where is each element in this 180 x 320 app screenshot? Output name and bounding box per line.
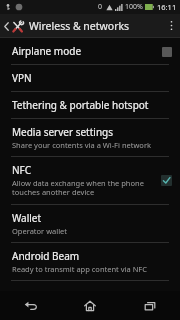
staticText: 0: [98, 2, 103, 12]
button[interactable]: Airplane mode: [0, 38, 180, 64]
staticText: VPN: [12, 71, 32, 85]
button[interactable]: Home: [60, 291, 120, 320]
staticText: Share your contents via a Wi-Fi network: [12, 140, 151, 150]
staticText: Android Beam: [12, 249, 80, 263]
button[interactable]: VPN: [0, 65, 180, 91]
button[interactable]: Up, Wireless & networks: [0, 19, 132, 33]
staticText: Wireless & networks: [29, 19, 130, 33]
button[interactable]: Recent apps: [120, 291, 180, 320]
staticText: Tethering & portable hotspot: [12, 98, 149, 112]
button[interactable]: More options: [162, 14, 180, 37]
button[interactable]: Unchecked: [161, 46, 172, 57]
staticText: 16:11: [157, 2, 177, 12]
button[interactable]: Wallet: [0, 205, 180, 242]
button[interactable]: Android Beam: [0, 243, 180, 280]
staticText: 100%: [125, 2, 143, 12]
button[interactable]: NFC: [0, 157, 180, 204]
staticText: NFC: [12, 163, 32, 177]
staticText: Allow data exchange when the phone touch…: [12, 178, 155, 198]
staticText: Operator wallet: [12, 226, 68, 236]
button[interactable]: Back: [0, 291, 60, 320]
staticText: Wallet: [12, 211, 42, 225]
staticText: Ready to transmit app content via NFC: [12, 264, 147, 274]
staticText: Airplane mode: [12, 44, 82, 58]
button[interactable]: Tethering & portable hotspot: [0, 92, 180, 118]
button[interactable]: Media server settings: [0, 119, 180, 156]
button[interactable]: Checked: [161, 175, 172, 186]
staticText: Media server settings: [12, 125, 114, 139]
